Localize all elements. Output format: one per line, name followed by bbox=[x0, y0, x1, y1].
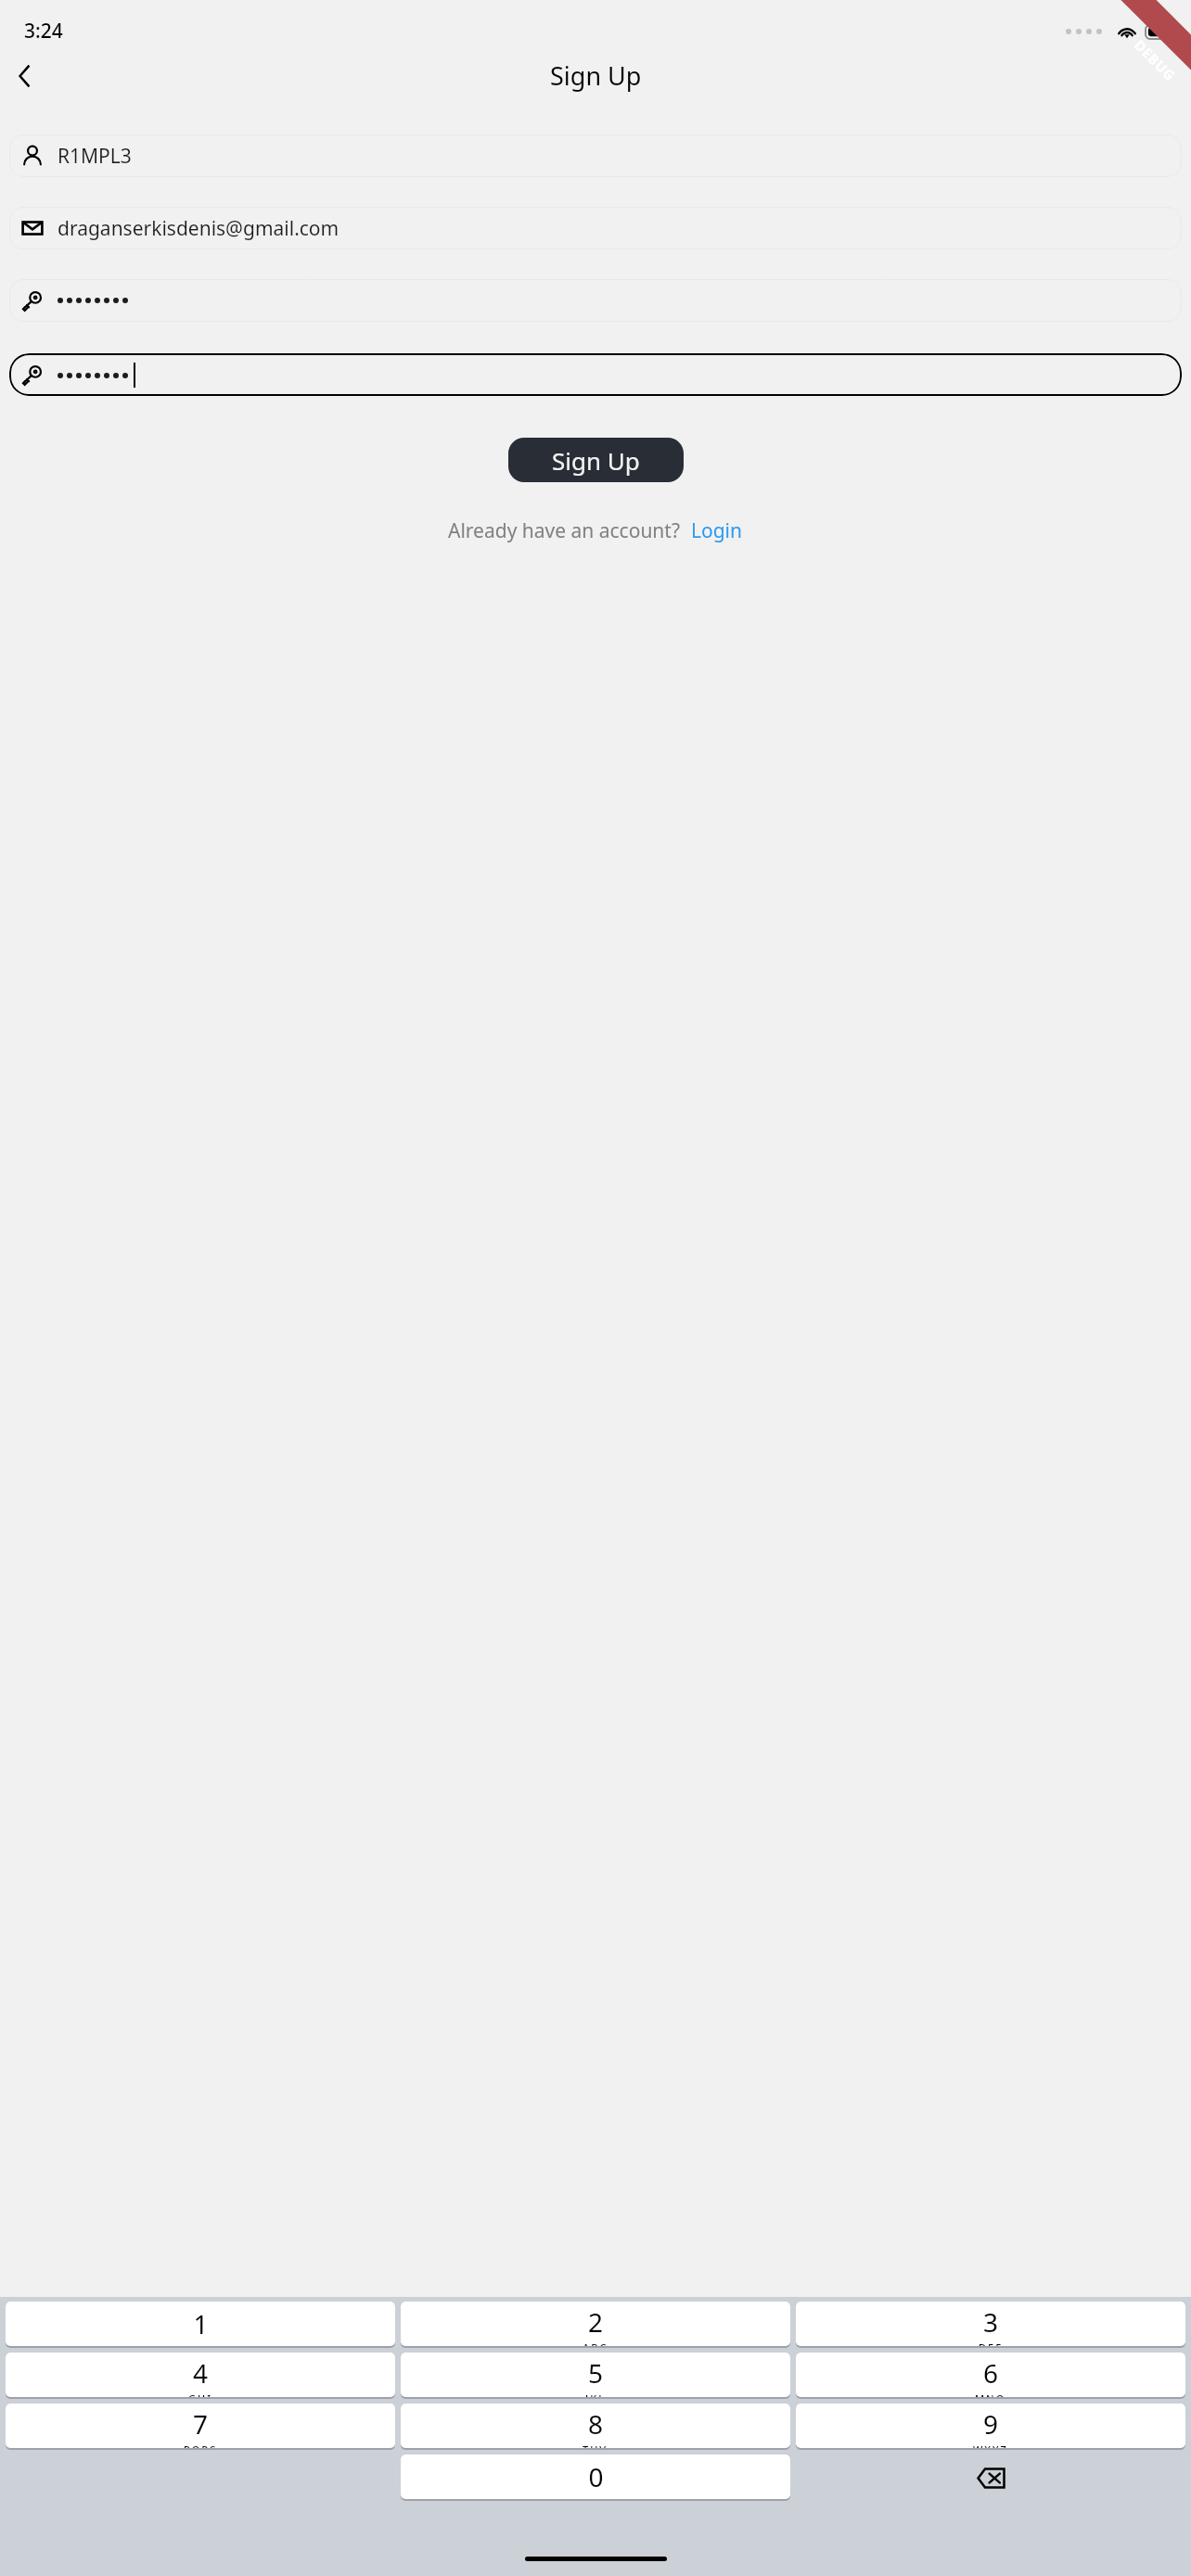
button[interactable]: 5 bbox=[401, 2353, 790, 2397]
button[interactable]: 8 bbox=[401, 2404, 790, 2448]
staticText: Sign Up bbox=[550, 58, 642, 93]
staticText: 1 bbox=[193, 2306, 209, 2341]
button[interactable] bbox=[9, 279, 1182, 322]
button[interactable]: Back bbox=[4, 58, 46, 93]
staticText: PQRS bbox=[184, 2442, 218, 2448]
staticText: draganserkisdenis@gmail.com bbox=[58, 215, 339, 242]
button[interactable]: 0 bbox=[401, 2455, 790, 2499]
staticText: 5 bbox=[588, 2355, 604, 2391]
staticText: 8 bbox=[588, 2406, 604, 2442]
button[interactable]: Login bbox=[691, 517, 743, 544]
button[interactable]: Backspace bbox=[796, 2455, 1185, 2501]
staticText: Login bbox=[691, 517, 743, 544]
staticText: 3 bbox=[983, 2304, 999, 2340]
button[interactable]: Sign Up bbox=[508, 438, 684, 482]
button[interactable]: 6 bbox=[796, 2353, 1185, 2397]
button[interactable] bbox=[9, 353, 1182, 396]
staticText: 2 bbox=[588, 2304, 604, 2340]
button[interactable]: 3 bbox=[796, 2302, 1185, 2346]
staticText: MNO bbox=[975, 2391, 1006, 2397]
staticText: JKL bbox=[585, 2391, 607, 2397]
staticText: DEBUG bbox=[1131, 36, 1180, 85]
button[interactable]: 4 bbox=[6, 2353, 395, 2397]
staticText: 6 bbox=[983, 2355, 999, 2391]
staticText: DEF bbox=[979, 2340, 1003, 2346]
button[interactable]: draganserkisdenis@gmail.com bbox=[9, 207, 1182, 249]
staticText: 7 bbox=[193, 2406, 209, 2442]
staticText: GHI bbox=[188, 2391, 213, 2397]
staticText: 9 bbox=[983, 2406, 999, 2442]
staticText: ABC bbox=[583, 2340, 608, 2346]
staticText: Already have an account? bbox=[448, 517, 681, 544]
staticText: 3:24 bbox=[24, 18, 63, 45]
button[interactable]: R1MPL3 bbox=[9, 134, 1182, 177]
button[interactable]: 2 bbox=[401, 2302, 790, 2346]
staticText: 0 bbox=[588, 2459, 604, 2494]
staticText: 4 bbox=[193, 2355, 209, 2391]
staticText: WXYZ bbox=[973, 2442, 1008, 2448]
staticText: R1MPL3 bbox=[58, 143, 132, 170]
button[interactable]: 7 bbox=[6, 2404, 395, 2448]
button[interactable]: 1 bbox=[6, 2302, 395, 2346]
staticText: TUV bbox=[583, 2442, 608, 2448]
staticText: Sign Up bbox=[552, 444, 640, 477]
button[interactable]: 9 bbox=[796, 2404, 1185, 2448]
